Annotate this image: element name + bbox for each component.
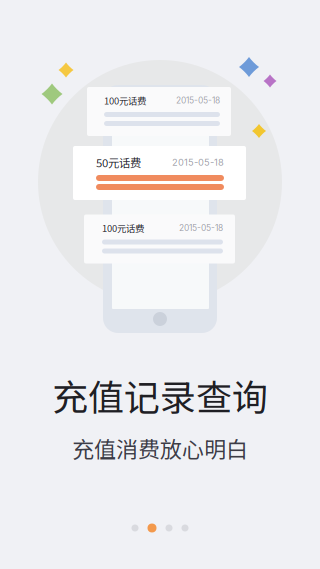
staticText: 2015-05-18 bbox=[172, 157, 224, 168]
staticText: 充值记录查询 bbox=[52, 369, 268, 421]
staticText: 2015-05-18 bbox=[176, 95, 220, 106]
staticText: 100元话费 bbox=[102, 221, 144, 235]
staticText: 50元话费 bbox=[96, 154, 141, 170]
staticText: 2015-05-18 bbox=[179, 223, 223, 233]
staticText: 100元话费 bbox=[104, 94, 146, 107]
staticText: 充值消费放心明白 bbox=[72, 432, 248, 464]
